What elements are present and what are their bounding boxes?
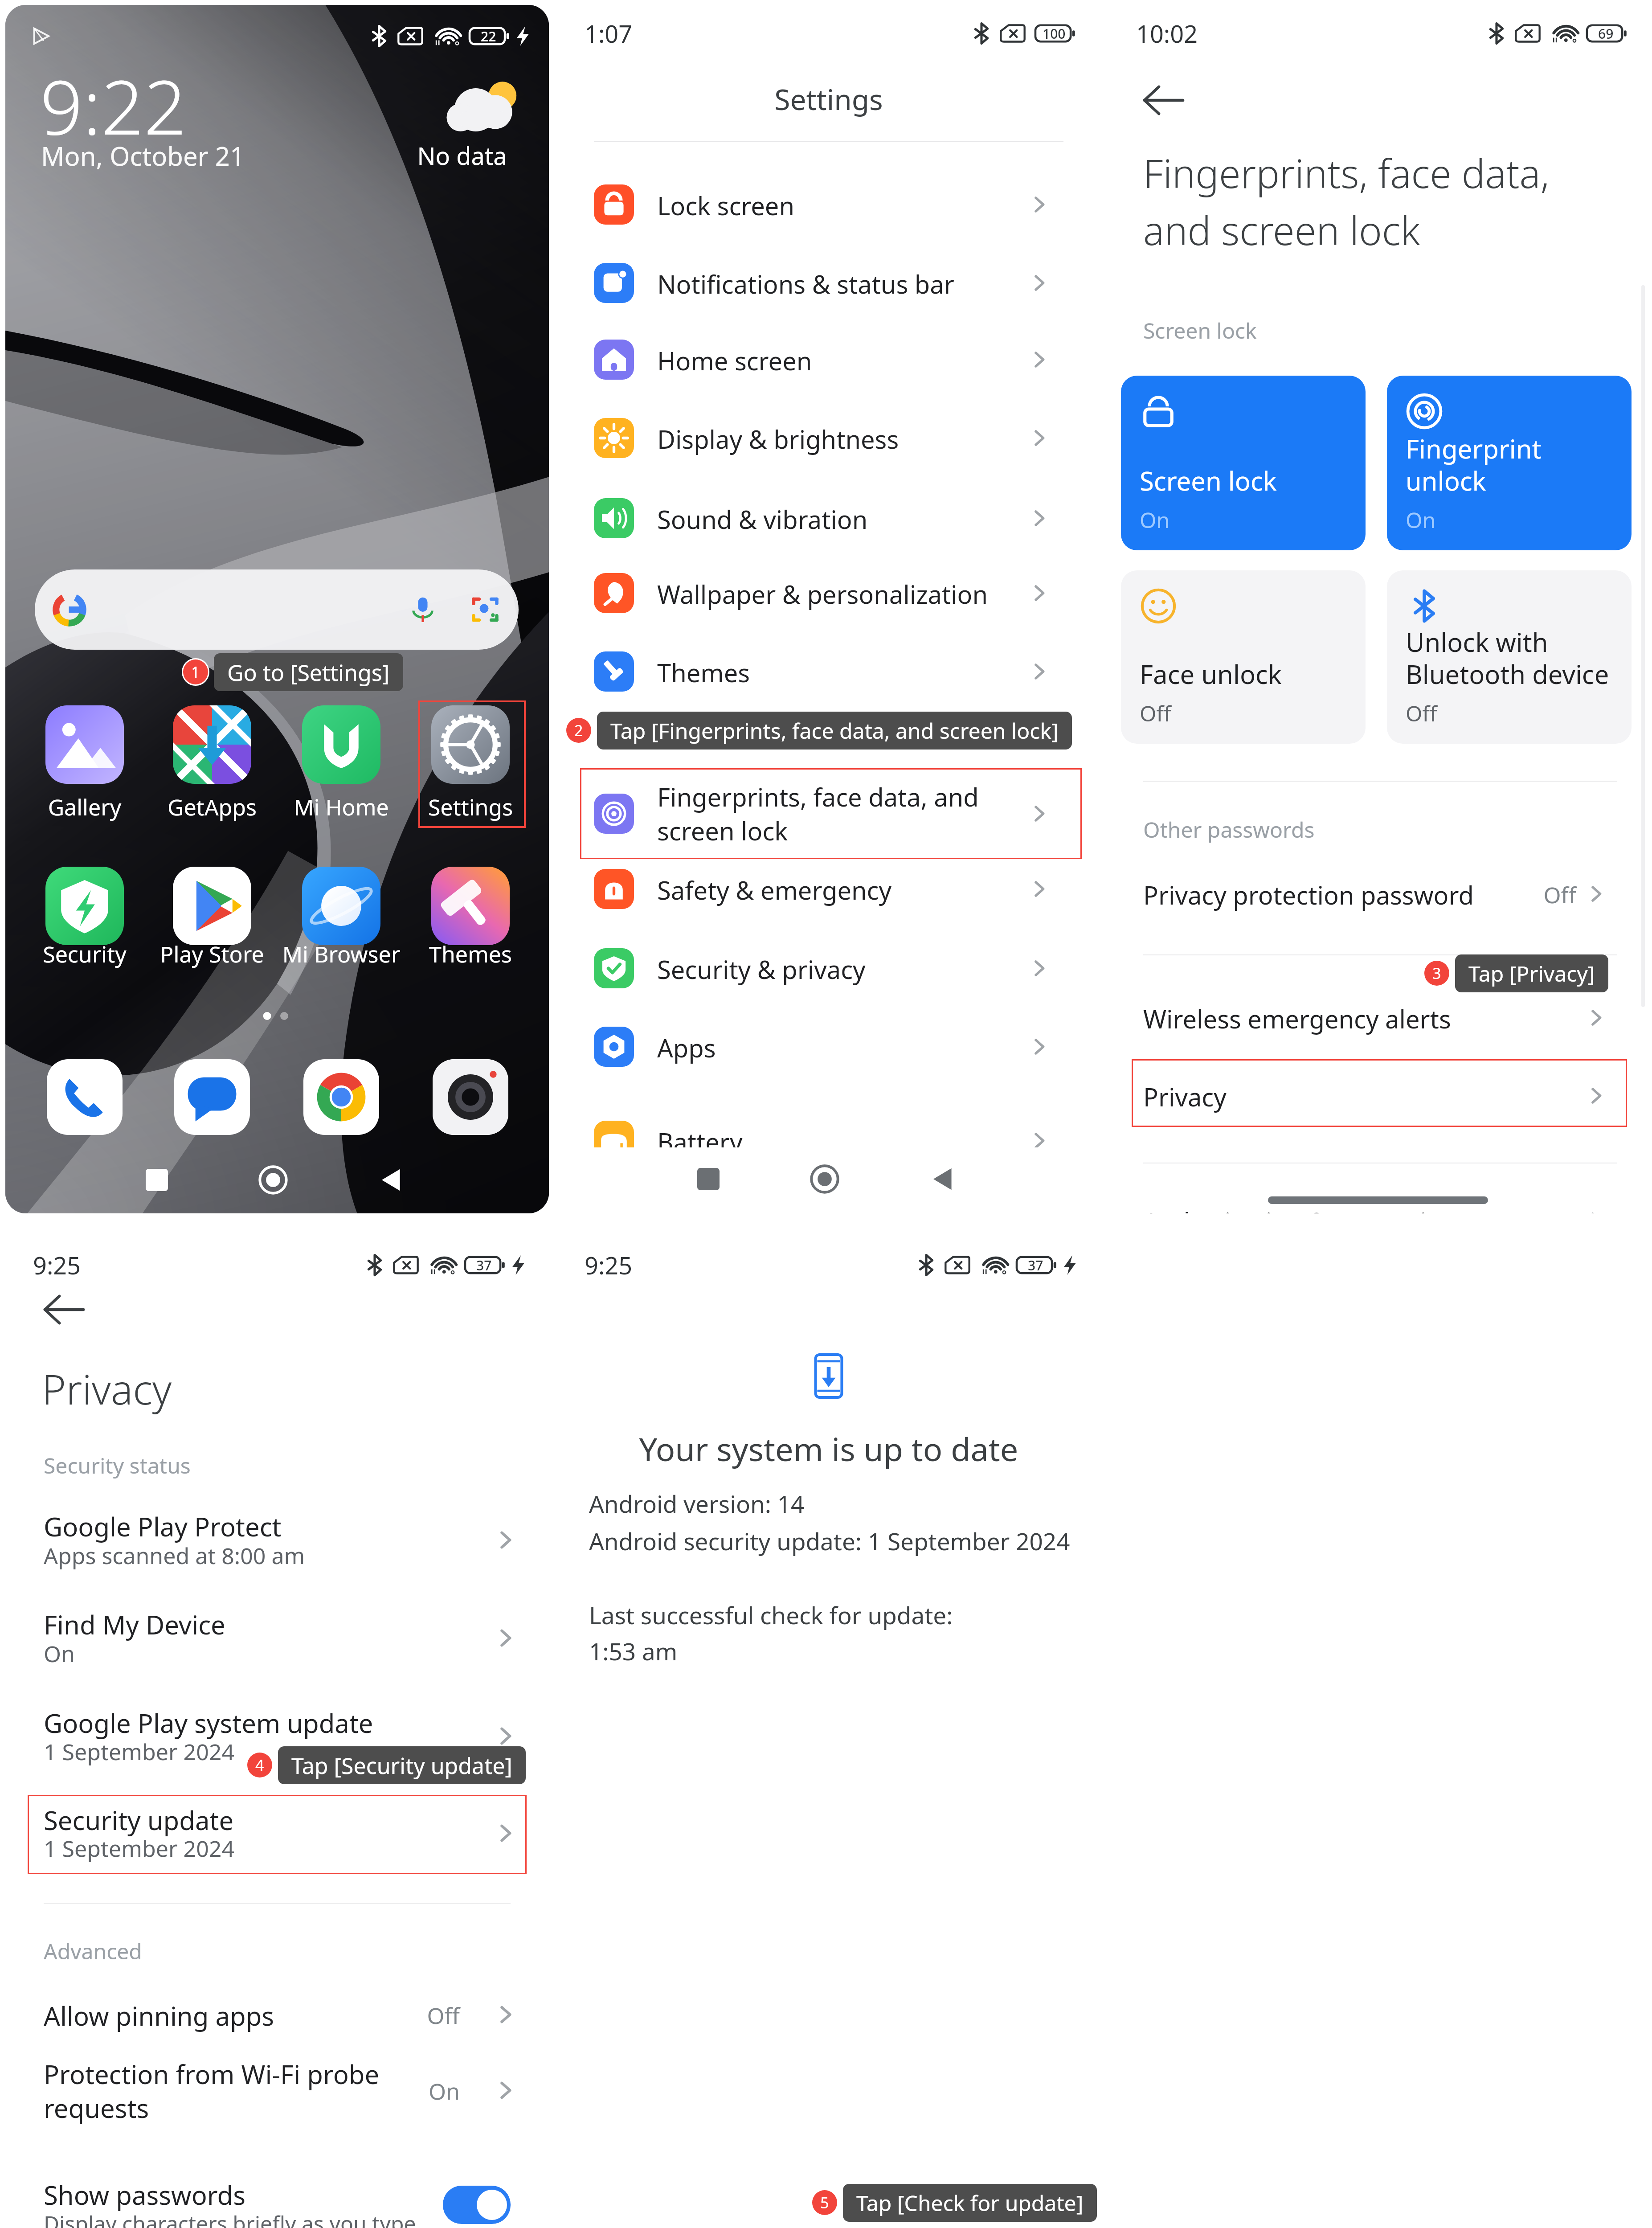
button[interactable]: Google search bbox=[35, 569, 519, 650]
button[interactable]: Show passwords toggle, on bbox=[443, 2186, 511, 2224]
staticText: Settings bbox=[408, 792, 533, 822]
button[interactable]: Home bbox=[258, 1165, 288, 1195]
staticText: Screen lock bbox=[1140, 463, 1277, 498]
staticText: Wireless emergency alerts bbox=[1143, 1002, 1451, 1036]
button[interactable]: Chrome bbox=[303, 1059, 379, 1135]
button[interactable]: Back bbox=[1140, 76, 1188, 124]
button[interactable] bbox=[1132, 1059, 1627, 1127]
staticText: 9:22 bbox=[40, 54, 187, 156]
button[interactable] bbox=[580, 320, 1082, 399]
staticText: Android version: 14 bbox=[589, 1487, 805, 1519]
button[interactable]: Recents bbox=[697, 1168, 720, 1190]
button[interactable]: Fingerprint unlock bbox=[1387, 376, 1632, 550]
button[interactable] bbox=[28, 1977, 527, 2052]
button[interactable] bbox=[580, 165, 1082, 244]
button[interactable] bbox=[580, 849, 1082, 929]
staticText: Apps scanned at 8:00 am bbox=[44, 1540, 305, 1571]
button[interactable] bbox=[580, 243, 1082, 323]
staticText: Other passwords bbox=[1143, 815, 1315, 844]
button[interactable]: Back bbox=[930, 1166, 956, 1192]
staticText: Google Play Protect bbox=[44, 1509, 282, 1544]
button[interactable] bbox=[28, 2156, 527, 2228]
staticText: Tap [Check for update] bbox=[856, 2188, 1084, 2217]
button[interactable] bbox=[580, 1007, 1082, 1086]
button[interactable] bbox=[580, 479, 1082, 558]
staticText: Mi Browser bbox=[279, 939, 404, 969]
button[interactable] bbox=[580, 553, 1082, 633]
button[interactable] bbox=[580, 632, 1082, 711]
staticText: 1 September 2024 bbox=[44, 1737, 234, 1767]
button[interactable] bbox=[28, 1795, 527, 1874]
button[interactable] bbox=[288, 861, 395, 981]
button[interactable] bbox=[1132, 980, 1627, 1055]
staticText: Themes bbox=[408, 939, 533, 969]
staticText: On bbox=[44, 1638, 75, 1669]
staticText: 2 bbox=[574, 720, 583, 741]
button[interactable] bbox=[417, 861, 524, 981]
staticText: Advanced bbox=[44, 1937, 142, 1966]
staticText: Security bbox=[22, 939, 147, 969]
button[interactable]: Phone bbox=[47, 1059, 123, 1135]
button[interactable] bbox=[28, 1489, 527, 1573]
button[interactable] bbox=[580, 1101, 1082, 1147]
staticText: Display & brightness bbox=[657, 422, 899, 456]
staticText: GetApps bbox=[150, 792, 274, 822]
staticText: 37 bbox=[476, 1256, 492, 1274]
button[interactable]: Screen lock bbox=[1121, 376, 1366, 550]
staticText: Fingerprint unlock bbox=[1406, 431, 1542, 498]
staticText: Settings bbox=[557, 80, 1100, 119]
staticText: Fingerprints, face data, and screen lock bbox=[657, 780, 1014, 848]
button[interactable] bbox=[580, 929, 1082, 1008]
button[interactable] bbox=[28, 2046, 527, 2135]
button[interactable] bbox=[28, 1685, 527, 1770]
staticText: Notifications & status bar bbox=[657, 267, 954, 301]
staticText: Face unlock bbox=[1140, 656, 1282, 692]
button[interactable]: Messages bbox=[174, 1059, 250, 1135]
staticText: Lock screen bbox=[657, 188, 795, 222]
staticText: Show passwords bbox=[44, 2177, 245, 2212]
button[interactable] bbox=[418, 700, 526, 828]
staticText: Sound & vibration bbox=[657, 502, 868, 536]
button[interactable]: Face unlock bbox=[1121, 570, 1366, 744]
button[interactable] bbox=[417, 700, 524, 819]
button[interactable] bbox=[28, 1587, 527, 1671]
staticText: Off bbox=[1140, 699, 1171, 728]
button[interactable] bbox=[31, 861, 138, 981]
staticText: On bbox=[1406, 505, 1436, 534]
staticText: Display characters briefly as you type bbox=[44, 2209, 416, 2228]
button[interactable] bbox=[288, 700, 395, 819]
staticText: 1 September 2024 bbox=[44, 1833, 234, 1863]
staticText: Themes bbox=[657, 655, 750, 689]
staticText: Protection from Wi-Fi probe requests bbox=[44, 2056, 400, 2126]
staticText: 4 bbox=[255, 1755, 264, 1775]
button[interactable]: Back bbox=[40, 1286, 88, 1334]
staticText: Apps bbox=[657, 1031, 716, 1065]
button[interactable] bbox=[1132, 856, 1627, 931]
button[interactable] bbox=[31, 700, 138, 819]
button[interactable]: Unlock with Bluetooth device bbox=[1387, 570, 1632, 744]
button[interactable] bbox=[580, 398, 1082, 478]
button[interactable] bbox=[159, 700, 266, 819]
staticText: 22 bbox=[481, 27, 496, 45]
staticText: Privacy bbox=[42, 1361, 172, 1417]
staticText: 5 bbox=[820, 2192, 829, 2213]
staticText: Off bbox=[388, 2000, 460, 2031]
button[interactable]: Recents bbox=[146, 1169, 168, 1191]
staticText: Off bbox=[1406, 699, 1437, 728]
button[interactable]: Back bbox=[379, 1167, 405, 1193]
button[interactable]: Camera bbox=[433, 1059, 508, 1135]
staticText: 9:25 bbox=[33, 1249, 81, 1282]
staticText: Find My Device bbox=[44, 1607, 225, 1642]
staticText: Fingerprints, face data, and screen lock bbox=[1143, 146, 1642, 257]
staticText: Tap [Security update] bbox=[291, 1750, 512, 1781]
button[interactable]: Home bbox=[810, 1164, 839, 1194]
staticText: Authorization & revocation bbox=[1143, 1204, 1457, 1213]
staticText: Play Store bbox=[150, 939, 274, 969]
staticText: Google Play system update bbox=[44, 1705, 373, 1741]
button[interactable] bbox=[159, 861, 266, 981]
button[interactable] bbox=[580, 768, 1082, 859]
staticText: 3 bbox=[1432, 963, 1441, 983]
staticText: Allow pinning apps bbox=[44, 1998, 274, 2033]
staticText: Mi Home bbox=[279, 792, 404, 822]
staticText: Go to [Settings] bbox=[227, 657, 390, 688]
